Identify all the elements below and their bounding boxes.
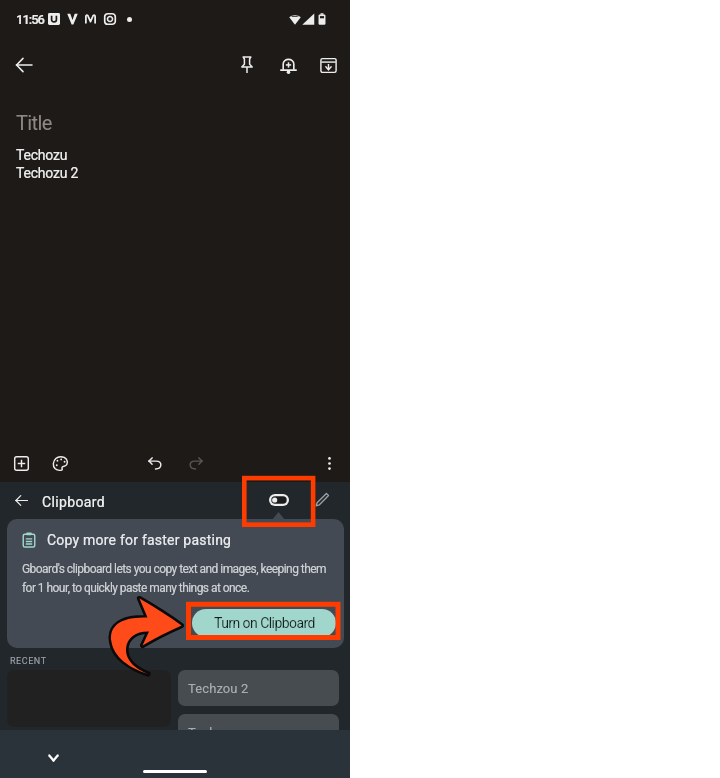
button[interactable]: Edit clipboard (308, 485, 337, 514)
button[interactable]: More options (314, 448, 344, 478)
button[interactable]: Back (9, 50, 39, 80)
staticText: Clipboard (42, 494, 105, 510)
staticText: Title (16, 111, 52, 134)
button[interactable]: Pin note (232, 50, 262, 80)
button[interactable]: Turn on Clipboard (192, 609, 336, 637)
staticText: Tech (188, 725, 217, 740)
button[interactable]: Add reminder (273, 50, 303, 80)
staticText: Techzou 2 (188, 681, 249, 696)
button[interactable] (7, 670, 171, 727)
button[interactable]: Change colour (45, 448, 75, 478)
staticText: 11:56 (16, 12, 44, 27)
staticText: RECENT (10, 656, 47, 667)
button[interactable]: Undo (140, 448, 170, 478)
staticText: Gboard's clipboard lets you copy text an… (22, 562, 330, 595)
button[interactable]: Redo (180, 448, 210, 478)
button[interactable]: Toggle clipboard (264, 485, 293, 514)
staticText: Techozu Techozu 2 (16, 147, 79, 181)
button[interactable]: Hide keyboard (38, 743, 68, 773)
button[interactable]: Add content (6, 448, 36, 478)
staticText: Turn on Clipboard (214, 615, 315, 631)
button[interactable]: Archive (313, 50, 343, 80)
button[interactable]: Tech (178, 714, 339, 750)
button[interactable]: Techzou 2 (178, 670, 339, 706)
button[interactable]: Back to keyboard (6, 485, 36, 515)
staticText: Copy more for faster pasting (47, 532, 232, 548)
